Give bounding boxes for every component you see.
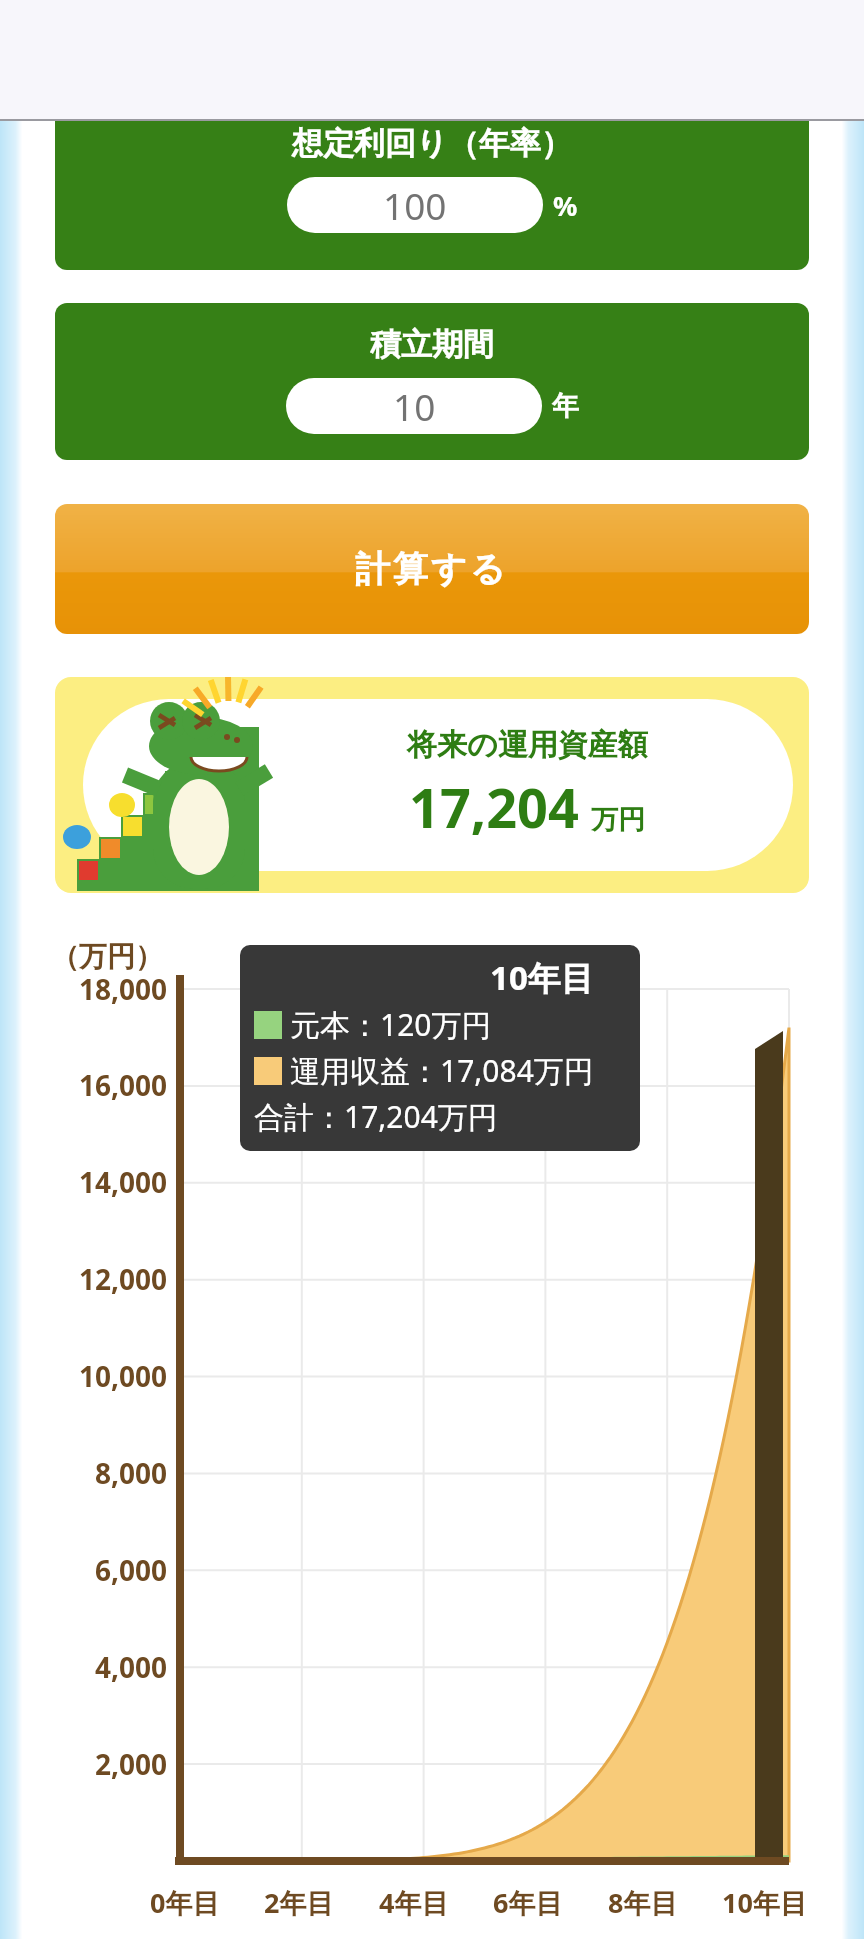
staticText: 4,000 bbox=[55, 1648, 167, 1686]
staticText: 10,000 bbox=[55, 1357, 167, 1395]
staticText: % bbox=[553, 187, 578, 224]
staticText: 将来の運用資産額 bbox=[407, 726, 648, 764]
button[interactable]: 将来の運用資産額 bbox=[55, 677, 809, 893]
staticText: 元本：120万円 bbox=[290, 1004, 492, 1045]
staticText: 合計：17,204万円 bbox=[254, 1096, 498, 1137]
staticText: 10 bbox=[393, 381, 436, 431]
staticText: 0年目 bbox=[150, 1884, 220, 1921]
staticText: 2,000 bbox=[55, 1745, 167, 1783]
button[interactable]: 積立期間 bbox=[55, 303, 809, 460]
staticText: 8,000 bbox=[55, 1454, 167, 1492]
staticText: 運用収益 bbox=[515, 951, 627, 986]
button[interactable]: 想定利回り（年率） bbox=[55, 121, 809, 270]
staticText: 年 bbox=[552, 389, 579, 423]
staticText: 運用収益：17,084万円 bbox=[290, 1050, 594, 1091]
staticText: 想定利回り（年率） bbox=[292, 124, 572, 163]
staticText: 10年目 bbox=[490, 955, 594, 1000]
staticText: （万円） bbox=[51, 939, 163, 974]
button[interactable]: 計算する bbox=[55, 504, 809, 634]
staticText: 6,000 bbox=[55, 1551, 167, 1589]
staticText: 100 bbox=[383, 180, 447, 230]
staticText: 10年目 bbox=[722, 1884, 807, 1921]
staticText: 8年目 bbox=[608, 1884, 678, 1921]
staticText: 4年目 bbox=[379, 1884, 449, 1921]
staticText: 17,204 bbox=[409, 770, 579, 844]
staticText: 6年目 bbox=[493, 1884, 563, 1921]
staticText: 積立期間 bbox=[370, 325, 494, 364]
staticText: 18,000 bbox=[55, 970, 167, 1008]
staticText: 16,000 bbox=[55, 1066, 167, 1104]
staticText: 万円 bbox=[591, 803, 645, 837]
staticText: 2年目 bbox=[264, 1884, 334, 1921]
staticText: 12,000 bbox=[55, 1260, 167, 1298]
staticText: 計算する bbox=[355, 547, 509, 591]
staticText: 14,000 bbox=[55, 1163, 167, 1201]
